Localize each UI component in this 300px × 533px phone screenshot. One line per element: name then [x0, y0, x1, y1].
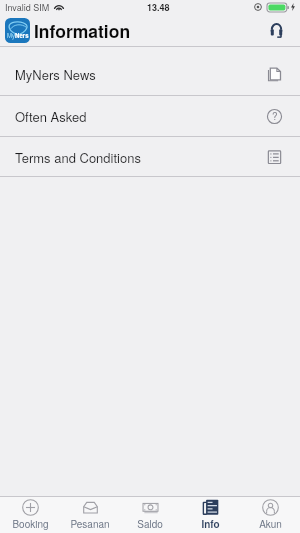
staticText: Often Asked: [15, 107, 87, 126]
staticText: Ners: [15, 31, 29, 40]
staticText: Terms and Conditions: [15, 148, 141, 167]
button[interactable]: Saldo: [120, 497, 180, 533]
button[interactable]: Akun: [240, 497, 300, 533]
staticText: Akun: [259, 517, 282, 531]
staticText: Pesanan: [70, 517, 110, 531]
staticText: Booking: [12, 517, 49, 531]
button[interactable]: Often Asked: [0, 96, 300, 136]
staticText: Info: [201, 517, 220, 531]
staticText: Information: [34, 18, 131, 43]
staticText: My: [7, 31, 15, 40]
staticText: 13.48: [147, 1, 170, 14]
button[interactable]: Customer support: [263, 17, 289, 43]
button[interactable]: Terms and Conditions: [0, 137, 300, 176]
button[interactable]: MyNers News: [0, 47, 300, 95]
staticText: ?: [272, 109, 278, 123]
button[interactable]: Info: [180, 497, 240, 533]
staticText: MyNers News: [15, 65, 96, 84]
staticText: Saldo: [137, 517, 163, 531]
button[interactable]: Pesanan: [60, 497, 120, 533]
staticText: Invalid SIM: [5, 1, 50, 14]
button[interactable]: Booking: [0, 497, 60, 533]
